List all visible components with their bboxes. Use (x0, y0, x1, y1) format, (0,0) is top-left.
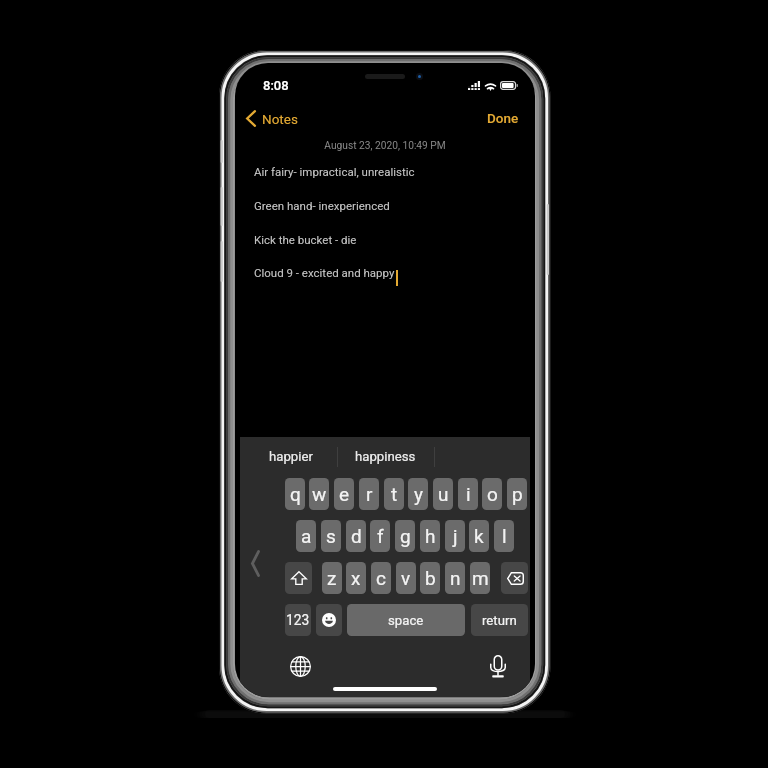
button[interactable]: Done (482, 105, 523, 131)
staticText: August 23, 2020, 10:49 PM (235, 140, 535, 152)
staticText: p (512, 483, 523, 505)
staticText: l (502, 525, 507, 547)
staticText: z (327, 567, 337, 589)
button[interactable]: l (494, 520, 514, 552)
staticText: u (438, 483, 449, 505)
button[interactable]: w (309, 478, 329, 510)
staticText: k (474, 525, 484, 547)
staticText: j (453, 525, 458, 547)
button[interactable] (285, 562, 312, 594)
staticText: 123 (286, 612, 310, 628)
staticText: c (376, 567, 386, 589)
button[interactable]: v (396, 562, 416, 594)
button[interactable]: happiness (344, 443, 427, 470)
button[interactable]: Change keyboard (286, 652, 314, 680)
button[interactable]: q (285, 478, 305, 510)
staticText: Notes (262, 111, 298, 127)
button[interactable]: f (370, 520, 390, 552)
button[interactable]: return (471, 604, 528, 636)
staticText: x (351, 567, 361, 589)
button[interactable]: m (470, 562, 490, 594)
staticText: e (339, 483, 350, 505)
staticText: return (482, 613, 517, 628)
button[interactable]: x (346, 562, 366, 594)
staticText: w (312, 483, 327, 505)
button[interactable]: Expand keyboard (245, 544, 265, 582)
staticText: Air fairy- impractical, unrealistic (254, 165, 415, 178)
button[interactable]: s (321, 520, 341, 552)
staticText: y (414, 483, 423, 505)
button[interactable]: space (347, 604, 465, 636)
staticText: s (326, 525, 336, 547)
staticText: space (388, 613, 424, 628)
staticText: f (377, 525, 384, 547)
staticText: d (351, 525, 362, 547)
staticText: 8:08 (263, 78, 289, 93)
button[interactable]: j (445, 520, 465, 552)
button[interactable]: o (482, 478, 502, 510)
button[interactable]: Notes (243, 105, 305, 131)
button[interactable]: g (395, 520, 415, 552)
staticText: happiness (355, 449, 416, 464)
staticText: h (425, 525, 436, 547)
staticText: t (391, 483, 398, 505)
staticText: Kick the bucket - die (254, 233, 357, 246)
button[interactable] (316, 604, 342, 636)
button[interactable]: d (346, 520, 366, 552)
button[interactable]: Dictate (484, 652, 512, 680)
staticText: m (472, 567, 489, 589)
staticText: a (301, 525, 312, 547)
button[interactable]: happier (255, 443, 327, 470)
staticText: v (401, 567, 411, 589)
button[interactable]: a (296, 520, 316, 552)
button[interactable]: b (420, 562, 440, 594)
staticText: i (466, 483, 471, 505)
staticText: o (487, 483, 498, 505)
button[interactable] (501, 562, 528, 594)
staticText: Green hand- inexperienced (254, 199, 390, 212)
staticText: happier (269, 449, 313, 464)
staticText: n (450, 567, 461, 589)
button[interactable]: z (322, 562, 342, 594)
button[interactable]: t (384, 478, 404, 510)
button[interactable]: p (507, 478, 527, 510)
button[interactable]: y (408, 478, 428, 510)
button[interactable]: r (359, 478, 379, 510)
staticText: g (400, 525, 411, 547)
staticText: Done (487, 110, 519, 126)
button[interactable]: 123 (285, 604, 311, 636)
button[interactable]: e (334, 478, 354, 510)
staticText: Cloud 9 - excited and happy (254, 266, 395, 279)
staticText: q (290, 483, 301, 505)
staticText: r (366, 483, 373, 505)
button[interactable]: u (433, 478, 453, 510)
button[interactable]: n (445, 562, 465, 594)
staticText: b (425, 567, 436, 589)
button[interactable]: i (458, 478, 478, 510)
button[interactable]: k (469, 520, 489, 552)
button[interactable]: h (420, 520, 440, 552)
button[interactable]: c (371, 562, 391, 594)
